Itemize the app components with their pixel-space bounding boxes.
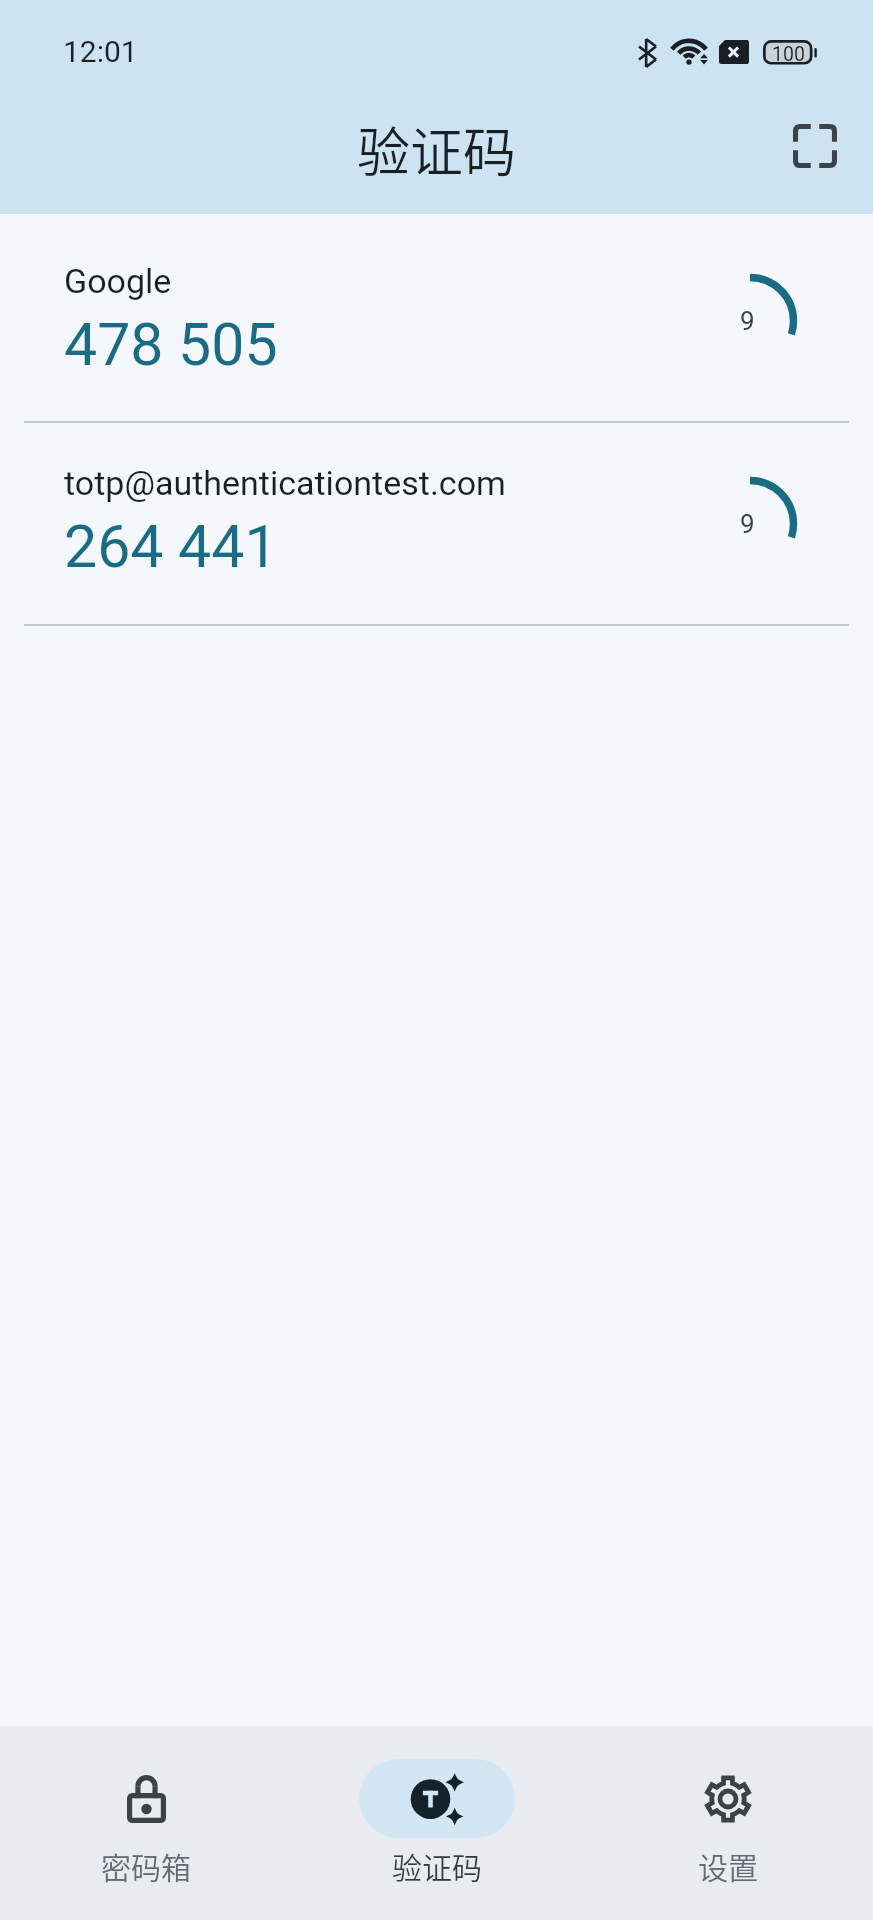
button[interactable]: 设置 <box>582 1726 873 1920</box>
button[interactable]: Google <box>0 214 873 421</box>
staticText: 验证码 <box>392 1844 482 1887</box>
staticText: 密码箱 <box>101 1844 191 1887</box>
button[interactable]: 扫描二维码 <box>773 104 857 188</box>
staticText: Google <box>64 261 172 301</box>
button[interactable]: 验证码 <box>291 1726 582 1920</box>
staticText: 100 <box>772 43 805 66</box>
staticText: 478 505 <box>64 310 278 379</box>
button[interactable]: totp@authenticationtest.com <box>0 423 873 624</box>
staticText: totp@authenticationtest.com <box>64 463 506 503</box>
staticText: 设置 <box>698 1844 758 1887</box>
staticText: 12:01 <box>63 34 138 69</box>
staticText: 264 441 <box>64 512 278 581</box>
staticText: 验证码 <box>357 111 516 188</box>
staticText: 9 <box>740 509 755 539</box>
staticText: 9 <box>740 306 755 336</box>
button[interactable]: 密码箱 <box>0 1726 291 1920</box>
